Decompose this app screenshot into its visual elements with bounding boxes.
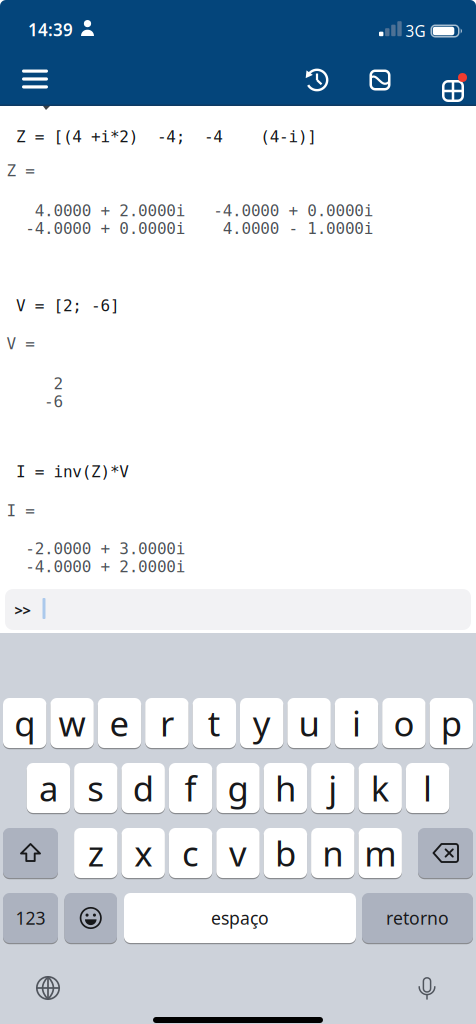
staticText: n [322, 830, 343, 876]
button[interactable] [18, 966, 78, 1010]
button[interactable] [420, 59, 464, 99]
button[interactable]: a [27, 763, 70, 813]
button[interactable]: espaço [124, 893, 356, 943]
button[interactable]: c [169, 828, 212, 878]
staticText: d [133, 765, 154, 811]
staticText: g [227, 765, 248, 811]
staticText: I = [6, 501, 35, 520]
button[interactable]: h [264, 763, 307, 813]
staticText: -6 [6, 392, 63, 411]
staticText: u [299, 700, 320, 746]
button[interactable]: k [358, 763, 402, 813]
staticText: r [160, 700, 174, 746]
staticText: Z = [6, 161, 35, 180]
button[interactable]: x [121, 828, 165, 878]
button[interactable]: u [287, 698, 331, 748]
button[interactable]: z [74, 828, 117, 878]
staticText: -4.0000 + 2.0000i [6, 557, 186, 576]
button[interactable] [64, 893, 117, 943]
button[interactable] [397, 966, 457, 1010]
button[interactable]: s [74, 763, 117, 813]
staticText: y [253, 700, 271, 746]
staticText: t [208, 700, 221, 746]
button[interactable]: q [3, 698, 46, 748]
button[interactable]: g [216, 763, 260, 813]
staticText: V = [2; -6] [6, 296, 120, 315]
button[interactable]: retorno [362, 893, 473, 943]
button[interactable] [3, 828, 58, 878]
staticText: l [423, 765, 432, 811]
staticText: 2 [6, 374, 63, 393]
staticText: 3G [405, 20, 425, 41]
staticText: >> [14, 600, 30, 620]
button[interactable]: i [335, 698, 378, 748]
staticText: 14:39 [28, 18, 73, 41]
button[interactable] [358, 60, 402, 100]
button[interactable]: b [264, 828, 307, 878]
staticText: m [364, 830, 396, 876]
button[interactable]: y [240, 698, 283, 748]
button[interactable]: m [358, 828, 402, 878]
button[interactable]: 123 [3, 893, 58, 943]
staticText: -2.0000 + 3.0000i [6, 539, 186, 558]
button[interactable]: w [50, 698, 94, 748]
staticText: s [87, 765, 104, 811]
staticText: i [352, 700, 361, 746]
button[interactable]: p [430, 698, 473, 748]
staticText: Z = [(4 +i*2) -4; -4 (4-i)] [6, 127, 317, 146]
staticText: o [393, 700, 414, 746]
button[interactable]: t [193, 698, 236, 748]
button[interactable] [13, 59, 57, 99]
button[interactable]: j [311, 763, 354, 813]
staticText: q [14, 700, 35, 746]
button[interactable]: v [216, 828, 260, 878]
staticText: espaço [211, 906, 269, 930]
staticText: retorno [386, 906, 449, 930]
button[interactable]: l [406, 763, 449, 813]
staticText: v [229, 830, 247, 876]
staticText: -4.0000 + 0.0000i 4.0000 - 1.0000i [6, 219, 374, 238]
staticText: h [275, 765, 296, 811]
staticText: V = [6, 334, 35, 353]
button[interactable]: >> [5, 589, 471, 630]
staticText: a [39, 765, 58, 811]
button[interactable]: n [311, 828, 354, 878]
staticText: e [109, 700, 129, 746]
staticText: I = inv(Z)*V [6, 462, 129, 481]
staticText: j [328, 765, 337, 811]
button[interactable]: d [121, 763, 165, 813]
button[interactable] [418, 828, 473, 878]
button[interactable]: r [145, 698, 189, 748]
staticText: k [371, 765, 390, 811]
staticText: c [182, 830, 199, 876]
button[interactable]: f [169, 763, 212, 813]
staticText: 4.0000 + 2.0000i -4.0000 + 0.0000i [6, 201, 374, 220]
staticText: f [185, 765, 197, 811]
button[interactable]: e [98, 698, 141, 748]
staticText: 123 [15, 906, 45, 930]
button[interactable] [295, 60, 339, 100]
staticText: w [59, 700, 86, 746]
staticText: z [88, 830, 104, 876]
button[interactable]: o [382, 698, 426, 748]
staticText: p [441, 700, 462, 746]
staticText: x [134, 830, 152, 876]
staticText: b [275, 830, 296, 876]
